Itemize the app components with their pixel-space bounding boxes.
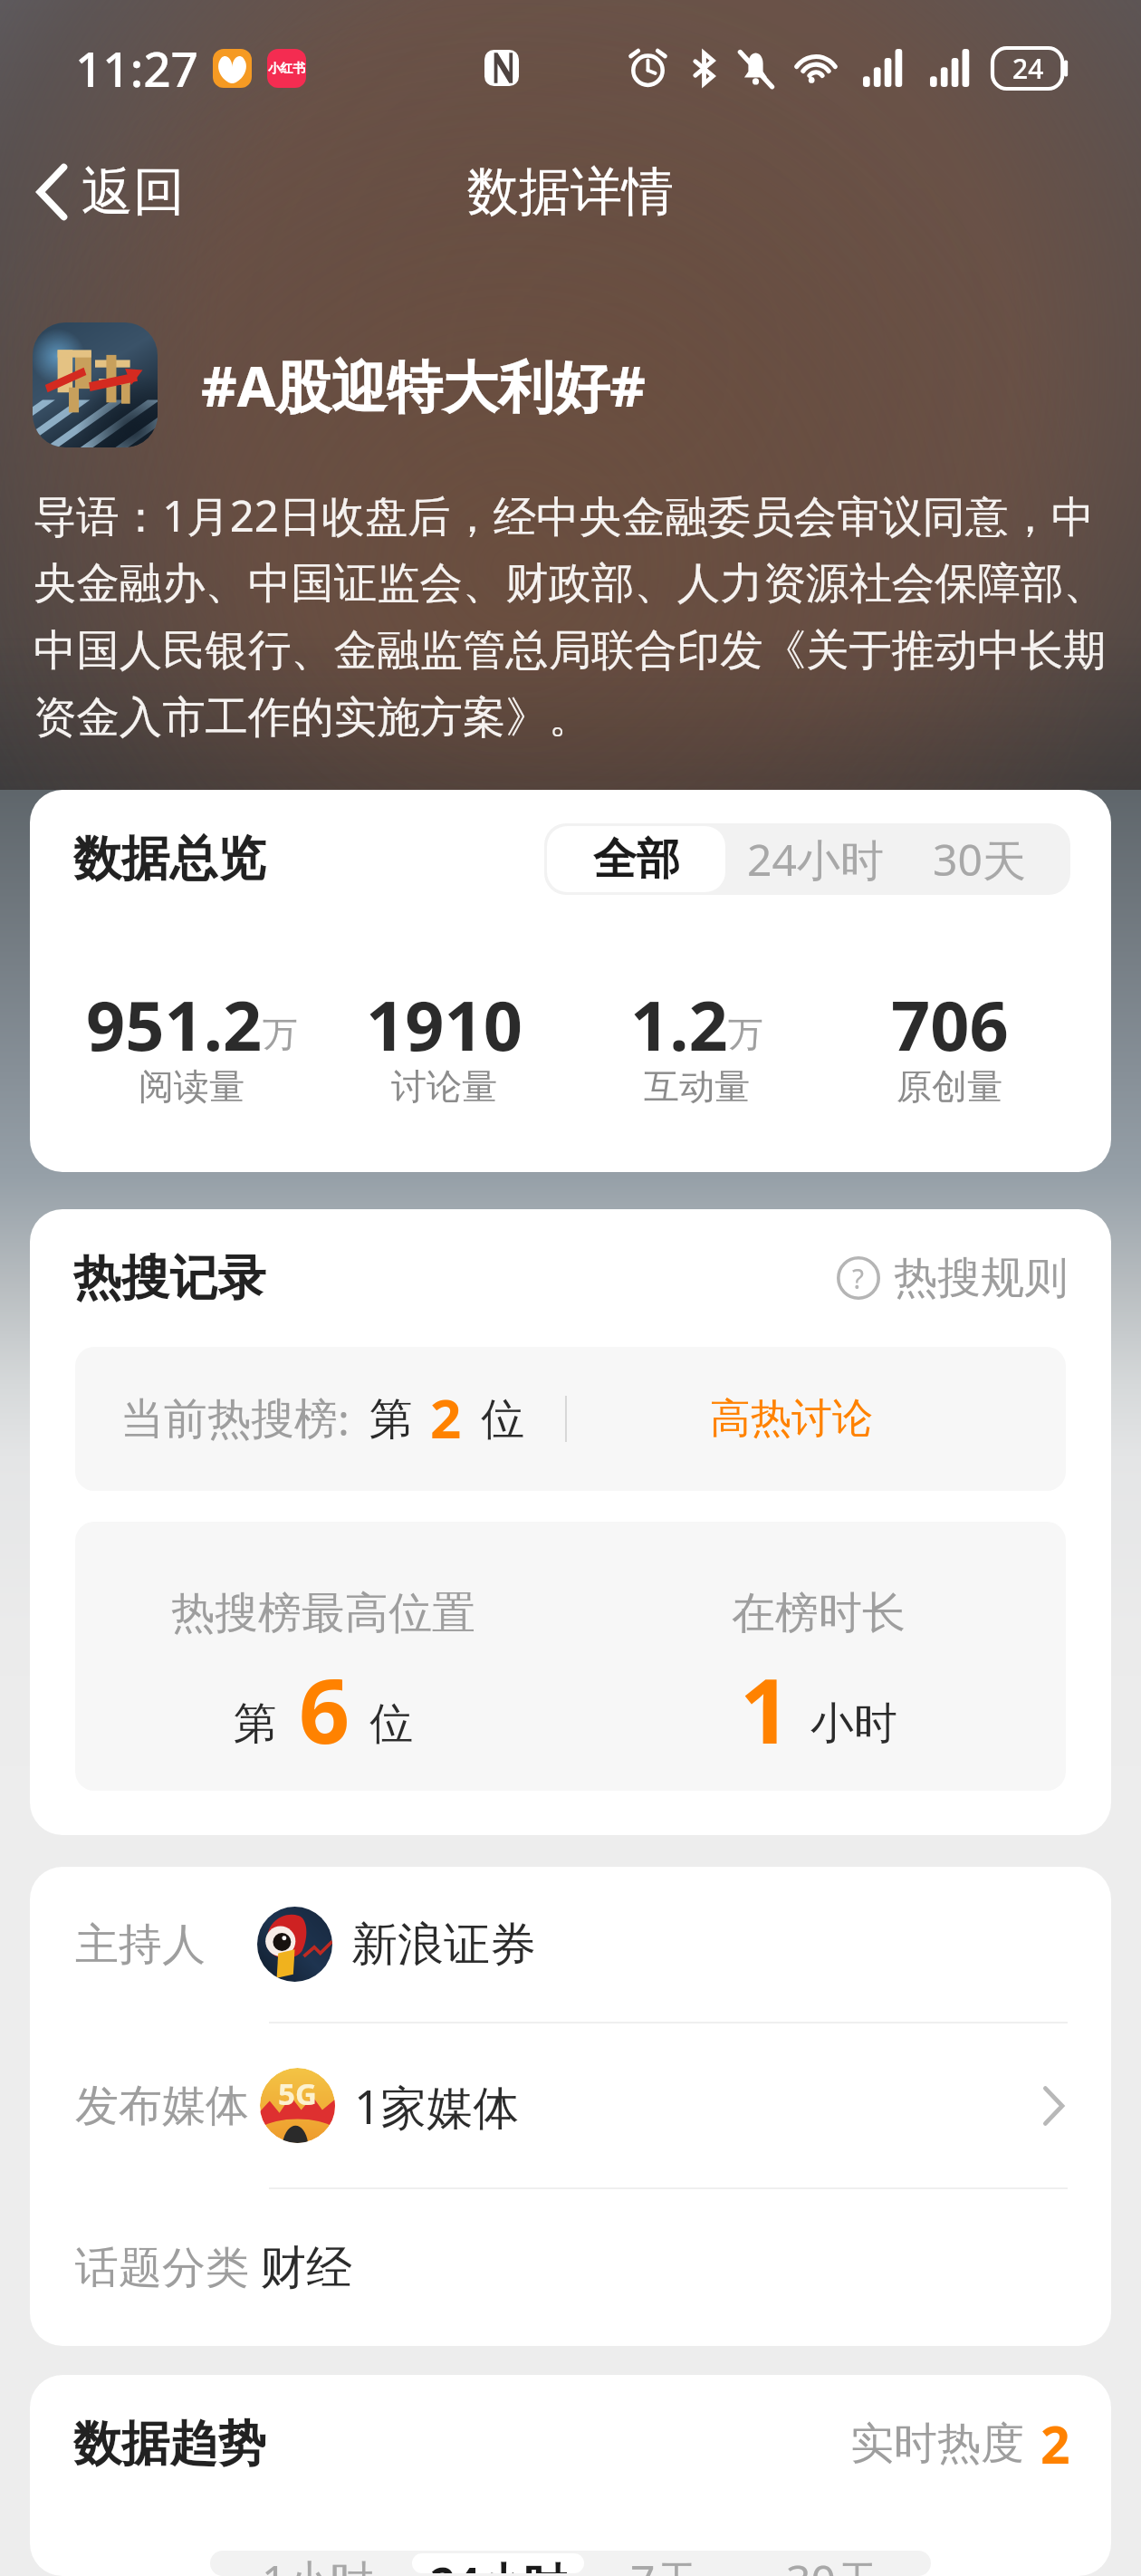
- staticText: 全部: [593, 832, 680, 887]
- staticText: 主持人: [75, 1918, 206, 1972]
- staticText: 热搜记录: [73, 1248, 266, 1309]
- button[interactable]: ?: [820, 1240, 1111, 1316]
- staticText: 11:27: [75, 35, 198, 101]
- staticText: 高热讨论: [710, 1393, 873, 1445]
- staticText: 发布媒体: [75, 2079, 249, 2133]
- staticText: 706: [891, 977, 1009, 1071]
- staticText: 万: [728, 1012, 763, 1056]
- staticText: 数据趋势: [73, 2414, 266, 2475]
- staticText: 24小时: [430, 2553, 567, 2573]
- staticText: 互动量: [644, 1064, 750, 1109]
- staticText: 24: [1012, 50, 1044, 87]
- staticText: ?: [852, 1260, 865, 1297]
- staticText: 话题分类: [75, 2241, 249, 2295]
- staticText: 小红书: [268, 61, 306, 76]
- staticText: 2: [430, 1380, 462, 1455]
- button[interactable]: 30天: [743, 2551, 931, 2576]
- button[interactable]: 24小时: [728, 823, 908, 895]
- staticText: 1小时: [262, 2551, 374, 2576]
- button[interactable]: 7天: [587, 2551, 743, 2576]
- staticText: 第: [234, 1697, 277, 1751]
- button[interactable]: 30天: [908, 823, 1070, 895]
- staticText: 数据总览: [73, 829, 266, 889]
- staticText: 财经: [260, 2239, 352, 2297]
- staticText: 位: [369, 1697, 413, 1751]
- staticText: 位: [481, 1392, 524, 1447]
- button[interactable]: 返回: [0, 143, 223, 241]
- staticText: 热搜规则: [894, 1251, 1068, 1305]
- staticText: 6: [299, 1648, 350, 1770]
- staticText: 当前热搜榜: [120, 1392, 338, 1447]
- staticText: 951.2: [86, 977, 263, 1071]
- staticText: 数据详情: [467, 159, 674, 225]
- staticText: 24小时: [747, 830, 884, 889]
- staticText: 30天: [786, 2551, 879, 2576]
- staticText: 新浪证券: [351, 1916, 536, 1974]
- staticText: 在榜时长: [732, 1586, 906, 1640]
- staticText: 万: [263, 1012, 298, 1056]
- button[interactable]: 话题分类: [30, 2189, 1111, 2346]
- staticText: 1.2: [630, 977, 728, 1071]
- button[interactable]: 全部: [547, 826, 725, 892]
- button[interactable]: 发布媒体: [30, 2023, 1111, 2187]
- staticText: 实时热度: [850, 2417, 1024, 2471]
- staticText: 1910: [366, 977, 523, 1071]
- staticText: 原创量: [896, 1064, 1002, 1109]
- staticText: 第: [369, 1392, 413, 1447]
- staticText: 5G: [278, 2073, 317, 2114]
- staticText: 热搜榜最高位置: [171, 1586, 475, 1640]
- staticText: 小时: [810, 1697, 897, 1751]
- staticText: 1家媒体: [354, 2074, 520, 2138]
- button[interactable]: 主持人: [30, 1867, 1111, 2022]
- staticText: 讨论量: [391, 1064, 497, 1109]
- button[interactable]: 1小时: [210, 2551, 409, 2576]
- staticText: 2: [1040, 2408, 1070, 2479]
- staticText: 7天: [630, 2551, 699, 2576]
- staticText: #A股迎特大利好#: [201, 347, 647, 423]
- button[interactable]: 24小时: [412, 2553, 584, 2573]
- staticText: 1: [740, 1648, 791, 1770]
- staticText: 阅读量: [139, 1064, 244, 1109]
- staticText: 返回: [81, 159, 185, 225]
- staticText: 导语：1月22日收盘后，经中央金融委员会审议同意，中央金融办、中国证监会、财政部…: [34, 485, 1130, 745]
- staticText: :: [338, 1389, 350, 1448]
- staticText: 30天: [933, 830, 1026, 889]
